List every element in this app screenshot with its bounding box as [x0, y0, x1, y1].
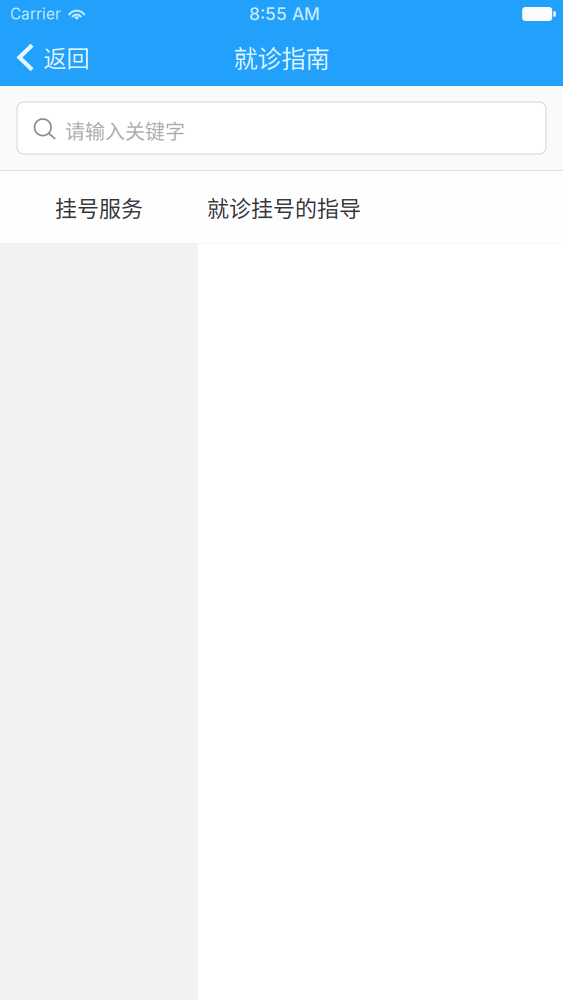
staticText: 就诊指南	[233, 39, 329, 74]
staticText: 挂号服务	[55, 191, 143, 223]
button[interactable]: 返回	[0, 28, 122, 86]
button[interactable]: 挂号服务	[0, 171, 198, 243]
staticText: 返回	[43, 40, 89, 74]
staticText: Carrier	[10, 5, 61, 23]
staticText: 8:55 AM	[249, 3, 320, 24]
button[interactable]: 搜索	[17, 102, 546, 154]
button[interactable]: 就诊挂号的指导	[198, 171, 563, 243]
staticText: 请输入关键字	[65, 116, 185, 145]
staticText: 就诊挂号的指导	[207, 191, 361, 223]
